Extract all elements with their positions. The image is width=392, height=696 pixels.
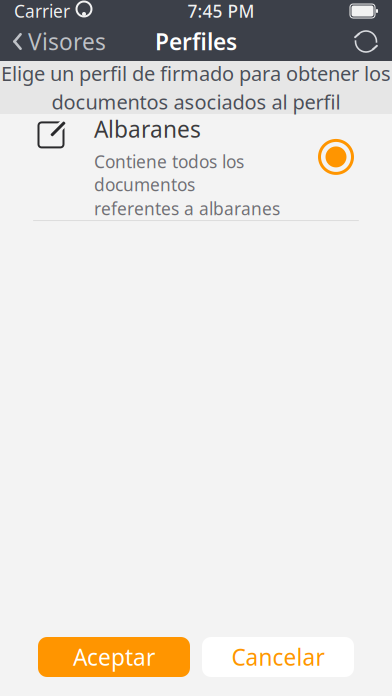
staticText: Albaranes — [94, 114, 201, 144]
staticText: Carrier — [14, 0, 70, 22]
staticText: Aceptar — [73, 642, 155, 672]
staticText: Elige un perfil de firmado para obtener … — [1, 60, 391, 86]
button[interactable]: Refresh — [340, 21, 392, 61]
staticText: 7:45 PM — [187, 0, 254, 22]
staticText: referentes a albaranes — [94, 197, 280, 220]
staticText: Cancelar — [231, 642, 324, 672]
staticText: Visores — [28, 26, 106, 56]
button[interactable]: Albaranes — [0, 114, 392, 213]
staticText: documentos asociados al perfil — [51, 88, 340, 115]
staticText: Contiene todos los documentos — [94, 150, 244, 196]
button[interactable]: Aceptar — [38, 637, 190, 677]
button[interactable]: Cancelar — [202, 637, 354, 677]
staticText: Perfiles — [155, 26, 237, 56]
button[interactable]: Visores — [0, 21, 118, 61]
